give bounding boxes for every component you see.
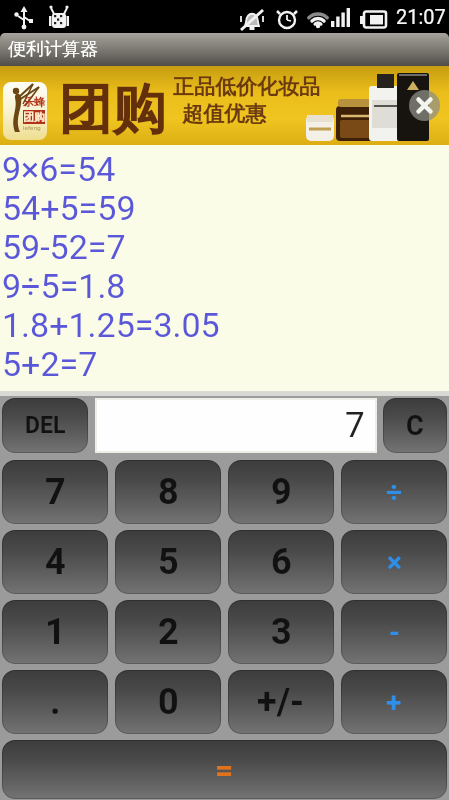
staticText: 便利计算器: [8, 38, 98, 61]
button[interactable]: 乐蜂: [0, 66, 449, 145]
button[interactable]: 8: [115, 460, 221, 524]
button[interactable]: 1: [2, 600, 108, 664]
staticText: 5: [158, 541, 179, 583]
staticText: 3: [271, 611, 292, 653]
button[interactable]: 6: [228, 530, 334, 594]
staticText: .: [50, 681, 61, 723]
staticText: C: [406, 410, 424, 442]
button[interactable]: DEL: [2, 398, 88, 453]
button[interactable]: -: [341, 600, 447, 664]
staticText: lefeng: [23, 124, 41, 132]
button[interactable]: 3: [228, 600, 334, 664]
staticText: ×: [387, 546, 402, 579]
staticText: 0: [158, 681, 179, 723]
button[interactable]: .: [2, 670, 108, 734]
button[interactable]: 9: [228, 460, 334, 524]
button[interactable]: +: [341, 670, 447, 734]
staticText: -: [389, 616, 400, 649]
staticText: +: [386, 686, 402, 719]
staticText: 1: [45, 611, 66, 653]
button[interactable]: 2: [115, 600, 221, 664]
staticText: 4: [45, 541, 66, 583]
staticText: 21:07: [396, 5, 446, 28]
button[interactable]: ×: [341, 530, 447, 594]
staticText: DEL: [25, 412, 66, 439]
button[interactable]: C: [383, 398, 447, 453]
button[interactable]: [409, 90, 440, 121]
staticText: 59-52=7: [2, 227, 126, 266]
button[interactable]: =: [2, 740, 447, 799]
staticText: 乐蜂: [23, 95, 45, 109]
staticText: 7: [345, 405, 365, 446]
staticText: 54+5=59: [2, 188, 136, 227]
staticText: =: [215, 751, 234, 789]
staticText: 正品低价化妆品: [173, 74, 320, 100]
staticText: 8: [158, 471, 179, 513]
button[interactable]: 0: [115, 670, 221, 734]
staticText: 5+2=7: [2, 344, 98, 383]
staticText: 9÷5=1.8: [2, 266, 126, 305]
staticText: 团购: [23, 110, 45, 124]
staticText: 9: [271, 471, 292, 513]
staticText: ÷: [386, 476, 402, 509]
button[interactable]: 7: [2, 460, 108, 524]
staticText: 2: [158, 611, 179, 653]
button[interactable]: 5: [115, 530, 221, 594]
staticText: 团购: [58, 76, 166, 144]
staticText: 6: [271, 541, 292, 583]
staticText: +/-: [257, 681, 305, 723]
button[interactable]: ÷: [341, 460, 447, 524]
staticText: 9×6=54: [2, 149, 116, 188]
staticText: 超值优惠: [182, 101, 266, 127]
button[interactable]: 7: [97, 400, 375, 451]
button[interactable]: +/-: [228, 670, 334, 734]
staticText: 7: [45, 471, 66, 513]
button[interactable]: 4: [2, 530, 108, 594]
staticText: 1.8+1.25=3.05: [2, 305, 220, 344]
